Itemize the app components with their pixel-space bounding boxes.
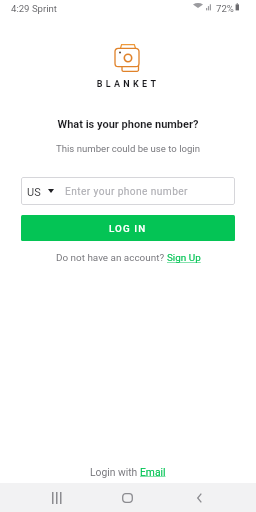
staticText: This number could be use to login (0, 143, 256, 154)
staticText: LOG IN (109, 223, 147, 234)
staticText: 4:29 Sprint (11, 3, 57, 14)
staticText: Email (140, 466, 166, 478)
button[interactable]: LOG IN (21, 215, 235, 241)
staticText: BLANKET (0, 79, 256, 90)
staticText: US (27, 186, 41, 199)
button[interactable]: US (21, 177, 235, 205)
staticText: Enter your phone number (65, 186, 188, 198)
button[interactable]: Back (187, 487, 212, 508)
staticText: What is your phone number? (0, 118, 256, 131)
staticText: Login with (90, 466, 140, 478)
button[interactable]: Home (115, 487, 140, 508)
staticText: 72% (216, 3, 234, 14)
staticText: Sign Up (167, 252, 201, 264)
button[interactable]: Email (140, 466, 166, 478)
staticText: Do not have an account? (56, 252, 167, 264)
button[interactable]: Recent apps (44, 487, 69, 508)
button[interactable]: Sign Up (167, 252, 201, 264)
